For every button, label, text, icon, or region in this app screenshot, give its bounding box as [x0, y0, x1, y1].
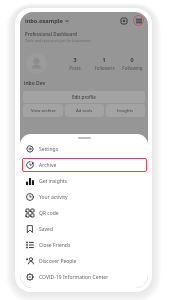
staticText: Saved [39, 226, 53, 233]
staticText: Discover People [39, 258, 77, 265]
staticText: Settings [39, 146, 59, 153]
staticText: 1 [102, 56, 106, 64]
staticText: Following [122, 65, 143, 71]
button[interactable]: Settings [26, 141, 142, 157]
button[interactable] [26, 53, 47, 74]
button[interactable]: Insights [106, 104, 145, 117]
staticText: Edit profile [72, 94, 96, 100]
button[interactable]: View archive [23, 104, 63, 117]
staticText: Tools and resources just for businesses [25, 38, 91, 43]
button[interactable]: Ad tools [65, 104, 104, 117]
button[interactable]: COVID-19 Information Center [26, 269, 142, 285]
staticText: Professional Dashboard [25, 31, 78, 37]
button[interactable]: Your activity [26, 189, 142, 205]
button[interactable]: Discover People [26, 253, 142, 269]
button[interactable]: Archive [26, 157, 142, 173]
staticText: inbo Dev [24, 80, 46, 87]
button[interactable]: QR code [26, 205, 142, 221]
button[interactable]: Get insights [26, 173, 142, 189]
staticText: View archive [31, 108, 56, 114]
button[interactable]: Menu [133, 15, 144, 26]
staticText: Get insights [39, 178, 67, 185]
button[interactable]: Close Friends [26, 237, 142, 253]
staticText: Followers [94, 65, 115, 71]
staticText: Posts [69, 65, 81, 71]
staticText: Your activity [39, 194, 68, 201]
staticText: 3 [73, 56, 77, 64]
staticText: QR code [39, 210, 59, 217]
staticText: Archive [39, 162, 57, 169]
staticText: 0 [130, 56, 134, 64]
button[interactable]: New post [118, 15, 129, 26]
staticText: Insights [117, 108, 134, 114]
staticText: Ad tools [76, 108, 93, 114]
staticText: inbo.example [25, 17, 63, 25]
button[interactable]: Saved [26, 221, 142, 237]
button[interactable]: Edit profile [23, 91, 145, 103]
staticText: Close Friends [39, 242, 71, 249]
staticText: COVID-19 Information Center [39, 274, 109, 281]
